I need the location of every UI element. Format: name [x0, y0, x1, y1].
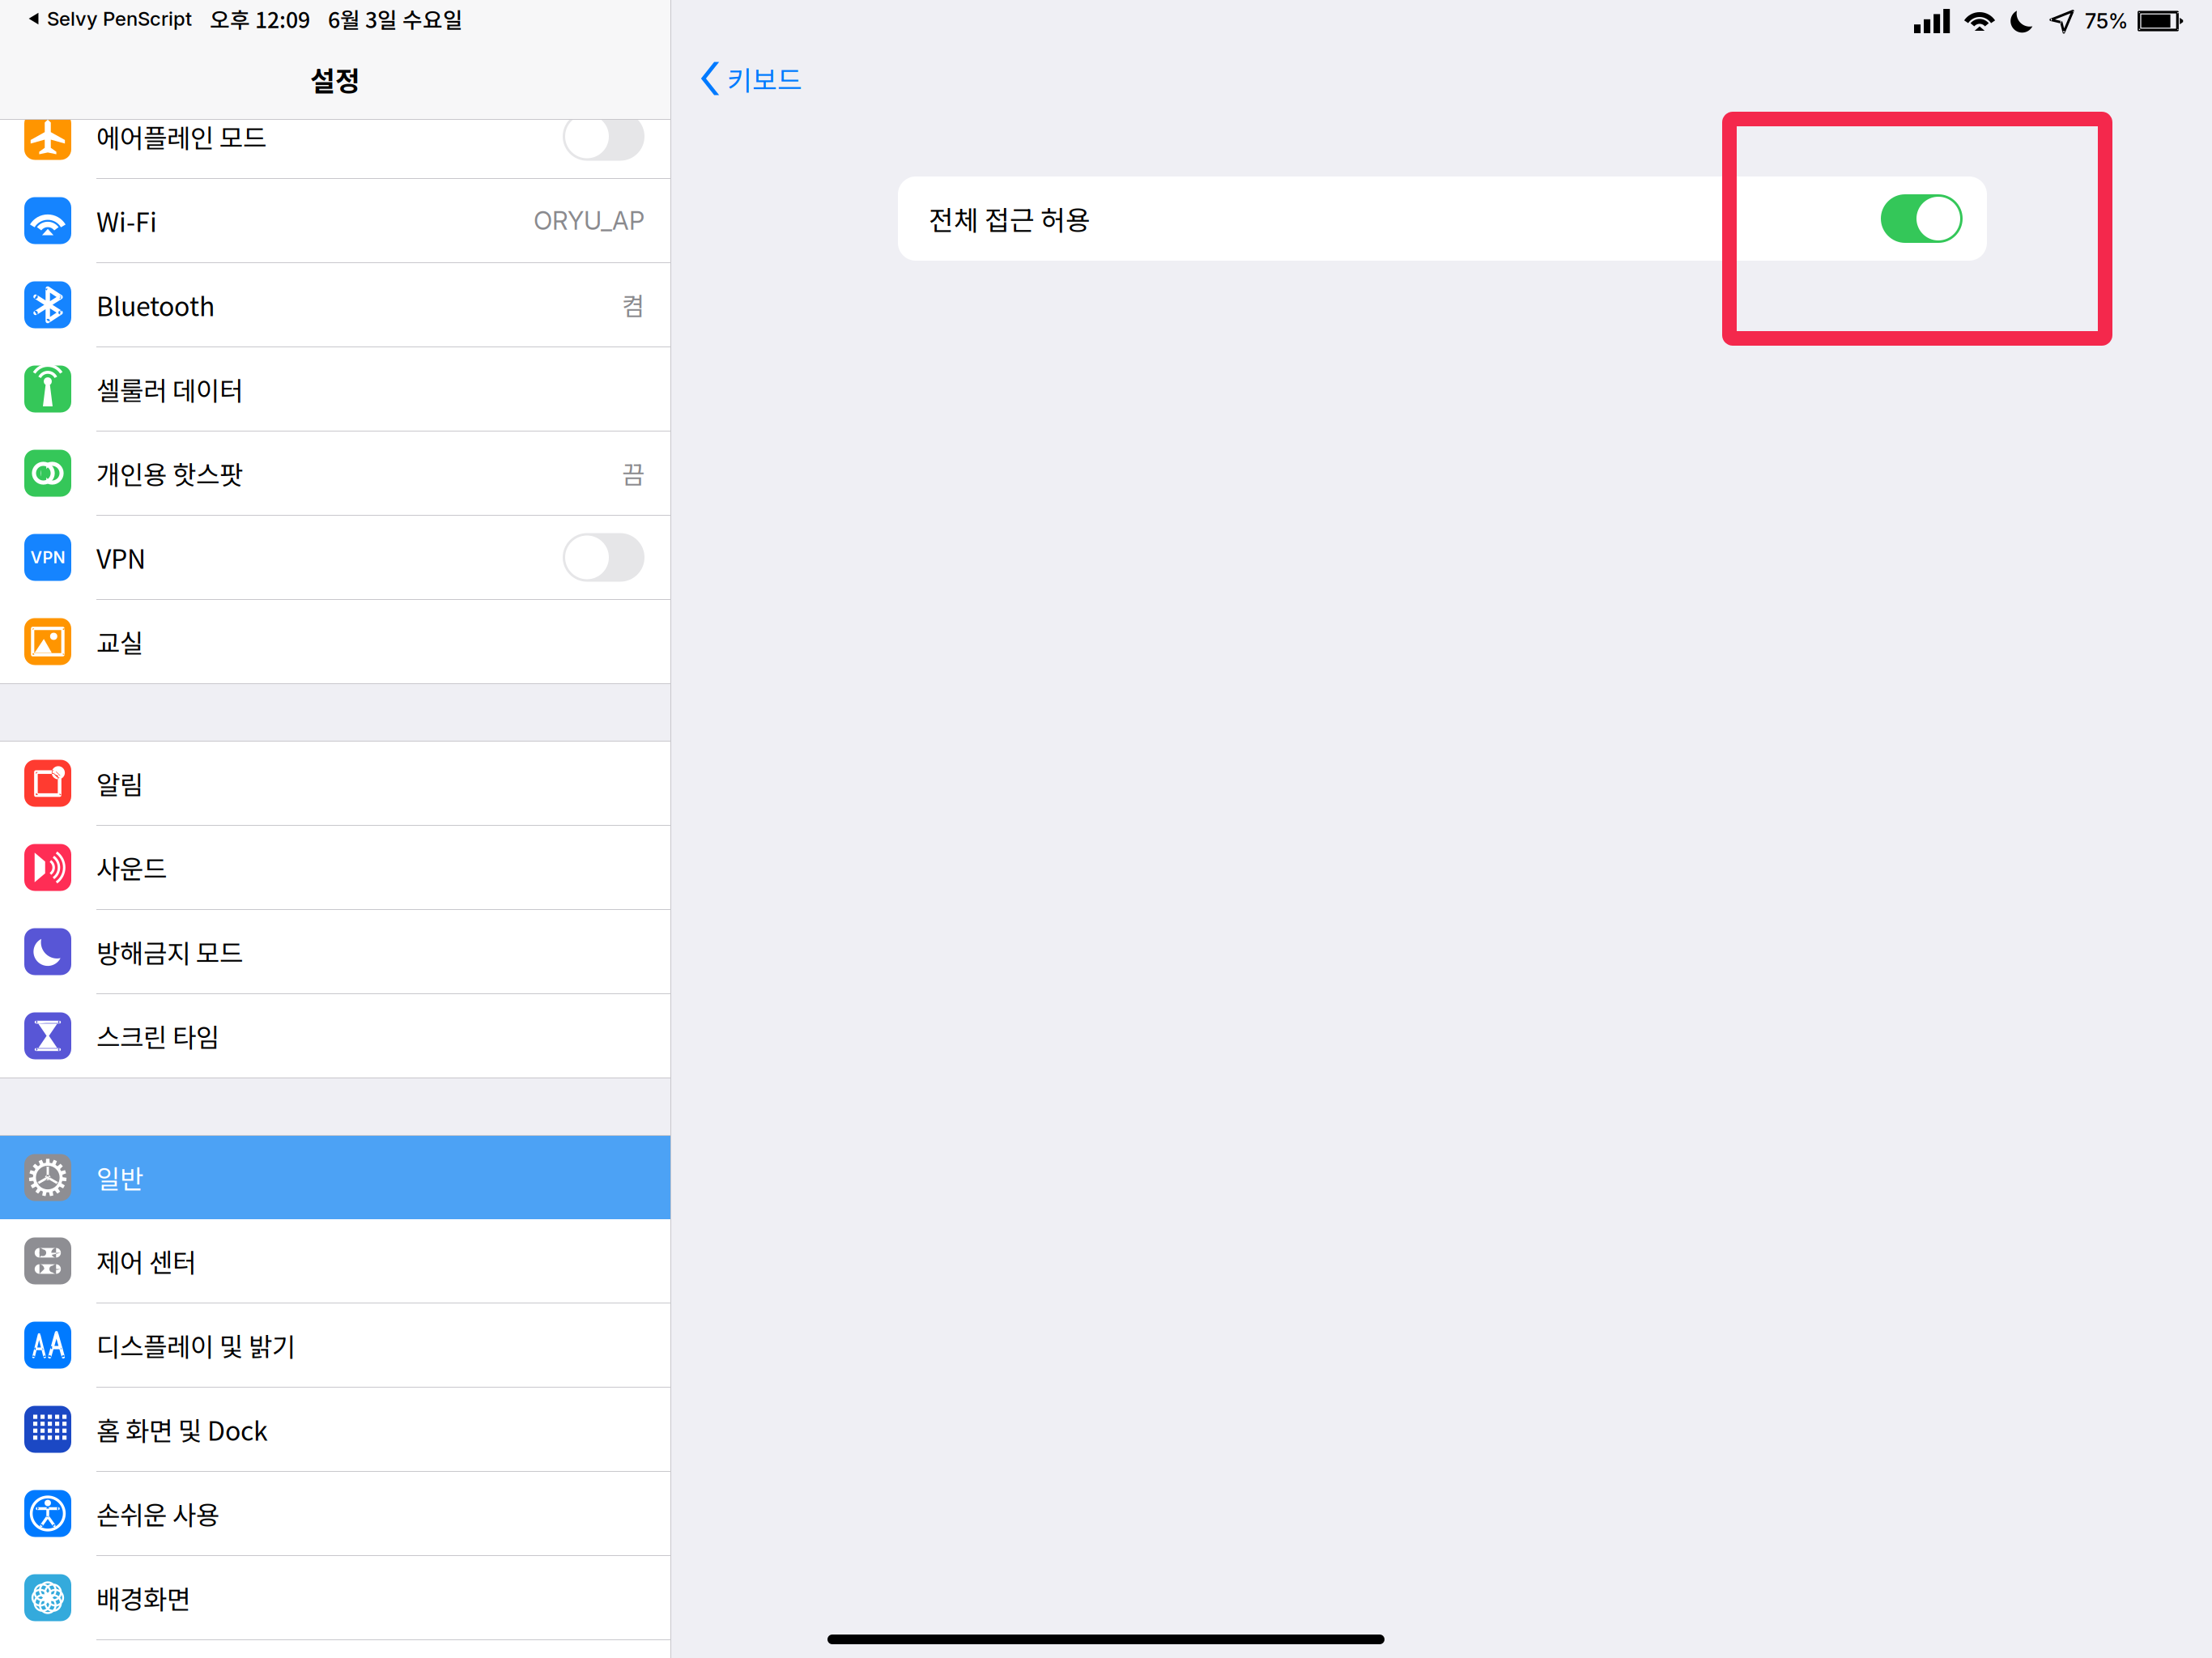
button[interactable]: 전체 접근 허용 [898, 176, 1987, 261]
staticText: 설정 [310, 60, 360, 99]
button[interactable]: 개인용 핫스팟 [0, 432, 670, 515]
staticText: 방해금지 모드 [96, 933, 243, 970]
staticText: VPN [96, 539, 146, 576]
button[interactable]: 알림 [0, 742, 670, 825]
staticText: 오후 12:09 [210, 3, 310, 34]
button[interactable]: Bluetooth [0, 263, 670, 346]
button[interactable]: 교실 [0, 600, 670, 683]
staticText: 6월 3일 수요일 [328, 3, 463, 34]
button[interactable]: 키보드 [670, 42, 823, 115]
staticText: 스크린 타임 [96, 1017, 219, 1055]
staticText: 사운드 [96, 849, 167, 886]
staticText: 켬 [622, 287, 644, 323]
staticText: Selvy PenScript [47, 7, 192, 30]
button[interactable]: 스크린 타임 [0, 994, 670, 1078]
staticText: 손쉬운 사용 [96, 1495, 219, 1532]
button[interactable]: 배경화면 [0, 1556, 670, 1639]
staticText: Bluetooth [96, 286, 215, 324]
staticText: 키보드 [727, 59, 802, 98]
staticText: 디스플레이 및 밝기 [96, 1326, 296, 1364]
button[interactable]: 제어 센터 [0, 1219, 670, 1303]
staticText: 에어플레인 모드 [96, 118, 266, 155]
button[interactable]: 셀룰러 데이터 [0, 347, 670, 431]
button[interactable]: 디스플레이 및 밝기 [0, 1303, 670, 1387]
staticText: 일반 [96, 1159, 143, 1196]
button[interactable]: VPN [0, 516, 670, 599]
button[interactable]: Wi-Fi [0, 179, 670, 262]
button[interactable]: 사운드 [0, 826, 670, 909]
staticText: 개인용 핫스팟 [96, 454, 243, 492]
staticText: 75% [2085, 9, 2128, 34]
button[interactable]: 에어플레인 모드 [0, 95, 670, 178]
staticText: VPN [30, 548, 65, 567]
staticText: 전체 접근 허용 [929, 199, 1091, 238]
staticText: ORYU_AP [534, 206, 644, 236]
staticText: 배경화면 [96, 1579, 190, 1616]
staticText: Wi-Fi [96, 202, 157, 239]
button[interactable]: 홈 화면 및 Dock [0, 1388, 670, 1471]
staticText: 알림 [96, 764, 143, 802]
button[interactable]: 일반 [0, 1136, 670, 1219]
staticText: 끔 [622, 455, 644, 491]
staticText: 교실 [96, 623, 143, 660]
staticText: 제어 센터 [96, 1242, 196, 1280]
button[interactable]: 손쉬운 사용 [0, 1472, 670, 1555]
staticText: 홈 화면 및 Dock [96, 1411, 268, 1448]
staticText: 셀룰러 데이터 [96, 370, 243, 408]
button[interactable]: 방해금지 모드 [0, 910, 670, 993]
